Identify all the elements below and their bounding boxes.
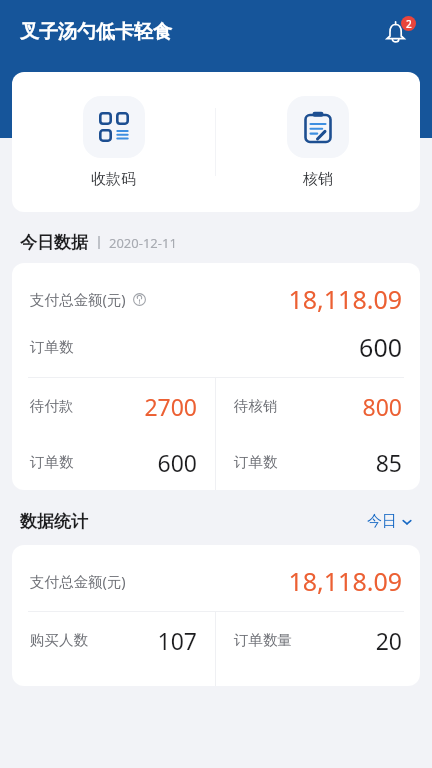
staticText: 收款码 [91,170,136,189]
staticText: 订单数 [30,338,74,356]
staticText: 购买人数 [30,631,88,649]
staticText: 今日 [367,512,397,531]
staticText: 107 [157,625,197,656]
staticText: 今日数据 [20,232,88,253]
button[interactable]: 核销 [216,90,420,195]
staticText: 800 [362,391,402,422]
staticText: 待付款 [30,397,74,415]
staticText: 订单数量 [234,631,292,649]
staticText: 85 [375,447,402,478]
staticText: 订单数 [234,453,278,471]
staticText: 18,118.09 [288,564,402,598]
button[interactable]: 收款码 [12,90,215,195]
staticText: 支付总金额(元) [30,571,126,591]
staticText: 2020-12-11 [109,234,177,252]
button[interactable]: 今日 [365,508,414,535]
staticText: 2700 [144,391,197,422]
staticText: 数据统计 [20,511,88,532]
staticText: 待核销 [234,397,278,415]
button[interactable]: Notifications [378,12,418,52]
staticText: 18,118.09 [288,282,402,316]
staticText: 600 [359,330,402,364]
staticText: 订单数 [30,453,74,471]
staticText: 支付总金额(元) [30,289,126,309]
staticText: 600 [157,447,197,478]
staticText: 叉子汤勺低卡轻食 [20,20,172,44]
staticText: 2 [406,17,412,31]
staticText: 核销 [303,170,333,189]
button[interactable]: Help [133,293,146,306]
staticText: 20 [375,625,402,656]
